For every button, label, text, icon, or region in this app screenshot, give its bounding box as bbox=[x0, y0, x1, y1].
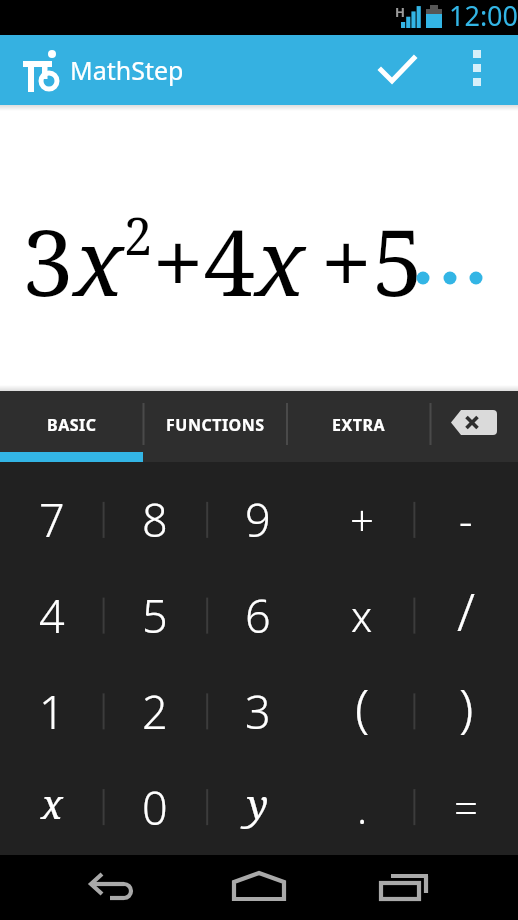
button[interactable]: y bbox=[206, 759, 310, 855]
staticText: 12:00 bbox=[449, 0, 518, 32]
staticText: . bbox=[357, 779, 368, 836]
staticText: x bbox=[41, 776, 63, 830]
staticText: 2 bbox=[142, 681, 168, 742]
button[interactable]: 1 bbox=[0, 663, 103, 759]
staticText: 0 bbox=[142, 777, 168, 838]
staticText: H bbox=[395, 3, 405, 21]
button[interactable]: 8 bbox=[103, 472, 206, 567]
staticText: 4 bbox=[39, 585, 65, 646]
button[interactable] bbox=[224, 855, 294, 920]
staticText: 3x2+4x +5 bbox=[22, 198, 424, 323]
button[interactable]: - bbox=[414, 472, 518, 567]
staticText: 7 bbox=[39, 489, 65, 550]
staticText: EXTRA bbox=[332, 414, 385, 436]
button[interactable]: = bbox=[414, 759, 518, 855]
staticText: / bbox=[457, 575, 476, 646]
staticText: BASIC bbox=[47, 414, 97, 436]
staticText: 1 bbox=[39, 681, 65, 742]
button[interactable] bbox=[368, 855, 438, 920]
button[interactable]: 4 bbox=[0, 567, 103, 663]
button[interactable]: 3 bbox=[206, 663, 310, 759]
staticText: MathStep bbox=[70, 53, 184, 87]
button[interactable]: + bbox=[310, 472, 414, 567]
staticText: 8 bbox=[142, 489, 168, 550]
button[interactable]: / bbox=[414, 567, 518, 663]
staticText: 5 bbox=[142, 585, 168, 646]
button[interactable]: FUNCTIONS bbox=[143, 391, 287, 462]
button[interactable] bbox=[430, 391, 518, 462]
staticText: y bbox=[247, 776, 269, 830]
button[interactable]: 6 bbox=[206, 567, 310, 663]
button[interactable]: x bbox=[0, 759, 103, 855]
button[interactable]: 0 bbox=[103, 759, 206, 855]
button[interactable]: 2 bbox=[103, 663, 206, 759]
button[interactable]: ) bbox=[414, 663, 518, 759]
staticText: = bbox=[454, 779, 478, 836]
staticText: ) bbox=[459, 671, 474, 742]
button[interactable]: 9 bbox=[206, 472, 310, 567]
button[interactable]: EXTRA bbox=[287, 391, 430, 462]
button[interactable] bbox=[362, 35, 432, 105]
staticText: + bbox=[350, 491, 374, 548]
staticText: ( bbox=[355, 671, 370, 742]
button[interactable]: BASIC bbox=[0, 391, 143, 462]
button[interactable]: . bbox=[310, 759, 414, 855]
staticText: FUNCTIONS bbox=[166, 414, 265, 436]
button[interactable]: x bbox=[310, 567, 414, 663]
button[interactable]: 5 bbox=[103, 567, 206, 663]
button[interactable] bbox=[80, 855, 150, 920]
button[interactable] bbox=[448, 35, 506, 105]
button[interactable]: 7 bbox=[0, 472, 103, 567]
staticText: x bbox=[351, 587, 373, 644]
staticText: 6 bbox=[245, 585, 271, 646]
staticText: 9 bbox=[245, 489, 271, 550]
button[interactable]: ( bbox=[310, 663, 414, 759]
staticText: 3 bbox=[245, 681, 271, 742]
staticText: - bbox=[459, 491, 473, 548]
